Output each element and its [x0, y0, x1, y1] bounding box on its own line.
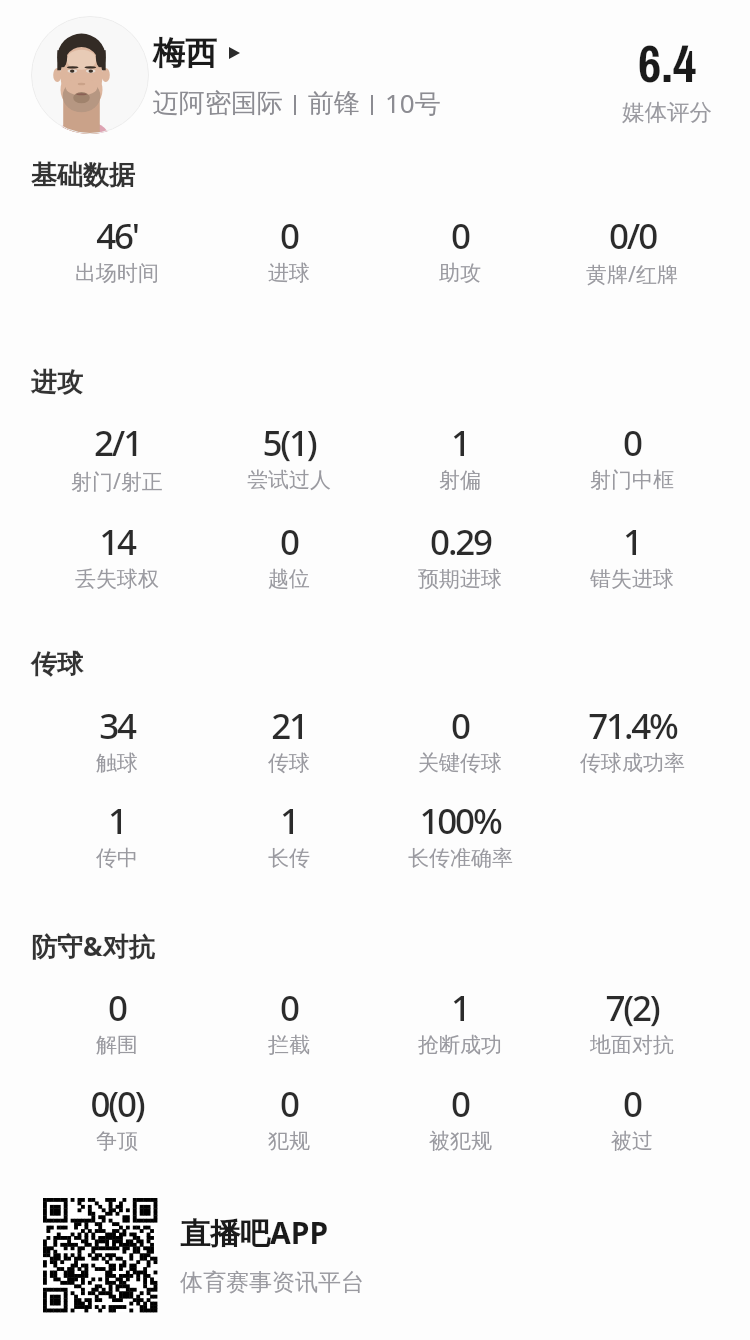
staticText: 长传准确率 — [408, 845, 513, 871]
staticText: 助攻 — [439, 260, 481, 286]
staticText: 0 — [623, 1080, 641, 1128]
staticText: 错失进球 — [590, 566, 674, 592]
button[interactable]: 0 — [375, 212, 545, 286]
staticText: 34 — [99, 702, 135, 750]
staticText: 0 — [451, 1080, 469, 1128]
staticText: 0.29 — [430, 518, 491, 566]
staticText: 1 — [108, 797, 126, 845]
staticText: 0(0) — [90, 1080, 144, 1128]
staticText: 解围 — [96, 1032, 138, 1058]
button[interactable]: 71.4% — [547, 702, 717, 776]
button[interactable]: 0 — [204, 518, 374, 592]
staticText: 传球成功率 — [580, 750, 685, 776]
button[interactable]: 7(2) — [547, 984, 717, 1058]
button[interactable]: 1 — [204, 797, 374, 871]
staticText: 体育赛事资讯平台 — [180, 1268, 364, 1297]
staticText: 前锋 — [308, 87, 360, 120]
button[interactable]: 0 — [204, 1080, 374, 1154]
staticText: 0 — [623, 419, 641, 467]
staticText: 丢失球权 — [75, 566, 159, 592]
staticText: 2/1 — [94, 419, 141, 467]
staticText: 抢断成功 — [418, 1032, 502, 1058]
staticText: 46' — [96, 212, 138, 260]
staticText: 射门中框 — [590, 467, 674, 493]
staticText: 0 — [451, 702, 469, 750]
staticText: 0 — [280, 1080, 298, 1128]
button[interactable]: 0 — [204, 212, 374, 286]
staticText: 出场时间 — [75, 260, 159, 286]
staticText: 长传 — [268, 845, 310, 871]
button[interactable]: 0 — [375, 1080, 545, 1154]
staticText: 100% — [419, 797, 501, 845]
staticText: 拦截 — [268, 1032, 310, 1058]
staticText: 5(1) — [262, 419, 316, 467]
staticText: 1 — [623, 518, 641, 566]
button[interactable]: 14 — [32, 518, 202, 592]
staticText: 触球 — [96, 750, 138, 776]
staticText: 媒体评分 — [622, 98, 712, 126]
staticText: 地面对抗 — [590, 1032, 674, 1058]
staticText: 进攻 — [31, 366, 83, 399]
button[interactable]: 34 — [32, 702, 202, 776]
button[interactable]: 球员头像 — [31, 16, 149, 134]
button[interactable]: 0 — [547, 1080, 717, 1154]
staticText: 1 — [451, 984, 469, 1032]
staticText: 被过 — [611, 1128, 653, 1154]
button[interactable]: 21 — [204, 702, 374, 776]
staticText: 犯规 — [268, 1128, 310, 1154]
button[interactable]: 5(1) — [204, 419, 374, 493]
staticText: 关键传球 — [418, 750, 502, 776]
staticText: 梅西 — [153, 33, 217, 73]
button[interactable]: 6.4 — [593, 29, 741, 126]
staticText: 传球 — [31, 648, 83, 681]
staticText: 1 — [451, 419, 469, 467]
staticText: 直播吧APP — [180, 1212, 329, 1253]
button[interactable]: 0 — [547, 419, 717, 493]
staticText: 0 — [280, 984, 298, 1032]
staticText: 越位 — [268, 566, 310, 592]
button[interactable]: 0/0 — [547, 212, 717, 289]
staticText: 7(2) — [605, 984, 659, 1032]
staticText: 1 — [280, 797, 298, 845]
button[interactable]: 0(0) — [32, 1080, 202, 1154]
button[interactable]: 直播吧APP — [180, 1212, 364, 1297]
staticText: 21 — [271, 702, 307, 750]
staticText: 射偏 — [439, 467, 481, 493]
staticText: 迈阿密国际 — [153, 87, 283, 120]
staticText: 0/0 — [609, 212, 656, 260]
staticText: 传中 — [96, 845, 138, 871]
button[interactable]: 0 — [204, 984, 374, 1058]
staticText: 传球 — [268, 750, 310, 776]
button[interactable]: 1 — [375, 984, 545, 1058]
staticText: 14 — [99, 518, 135, 566]
button[interactable]: 1 — [375, 419, 545, 493]
staticText: 进球 — [268, 260, 310, 286]
staticText: 被犯规 — [429, 1128, 492, 1154]
staticText: 71.4% — [588, 702, 677, 750]
staticText: 10号 — [385, 85, 441, 121]
button[interactable]: 扫码下载直播吧APP — [43, 1198, 157, 1312]
staticText: 争顶 — [96, 1128, 138, 1154]
button[interactable]: 0 — [32, 984, 202, 1058]
button[interactable]: 1 — [32, 797, 202, 871]
staticText: 基础数据 — [31, 159, 135, 192]
button[interactable]: 2/1 — [32, 419, 202, 496]
staticText: 预期进球 — [418, 566, 502, 592]
button[interactable]: 0 — [375, 702, 545, 776]
staticText: 黄牌/红牌 — [586, 260, 678, 289]
staticText: 0 — [280, 518, 298, 566]
staticText: 0 — [280, 212, 298, 260]
button[interactable]: 100% — [375, 797, 545, 871]
button[interactable]: 梅西 — [153, 33, 240, 73]
staticText: 防守&对抗 — [31, 928, 155, 964]
button[interactable]: 1 — [547, 518, 717, 592]
staticText: 0 — [451, 212, 469, 260]
button[interactable]: 0.29 — [375, 518, 545, 592]
staticText: 射门/射正 — [71, 467, 163, 496]
button[interactable]: 46' — [32, 212, 202, 286]
staticText: 尝试过人 — [247, 467, 331, 493]
staticText: 6.4 — [638, 29, 697, 98]
staticText: 0 — [108, 984, 126, 1032]
